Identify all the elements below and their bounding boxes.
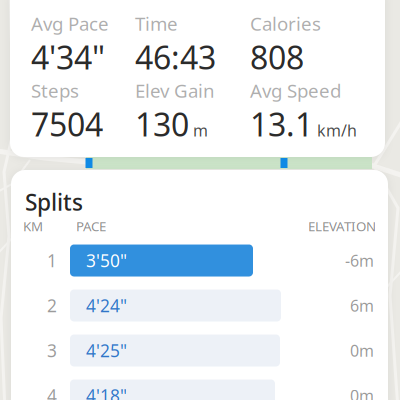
staticText: 808 — [250, 36, 304, 78]
staticText: PACE — [76, 217, 106, 235]
staticText: 3'50" — [86, 249, 127, 272]
staticText: Avg Speed — [250, 78, 341, 103]
staticText: Splits — [25, 187, 83, 217]
staticText: 2 — [47, 294, 57, 317]
staticText: 0m — [350, 340, 374, 361]
staticText: Elev Gain — [135, 78, 215, 103]
staticText: 4 — [47, 384, 57, 400]
staticText: 4'18" — [86, 384, 127, 400]
staticText: 6m — [350, 295, 374, 316]
button[interactable]: 3 — [25, 328, 374, 373]
staticText: 1 — [47, 249, 57, 272]
staticText: 130 — [135, 103, 189, 145]
staticText: 3 — [47, 339, 57, 362]
staticText: Avg Pace — [31, 11, 109, 36]
staticText: KM — [23, 217, 43, 235]
staticText: km/h — [317, 120, 357, 141]
staticText: Calories — [250, 11, 321, 36]
button[interactable]: 1 — [25, 238, 374, 283]
staticText: 7504 — [31, 103, 103, 145]
button[interactable]: 4 — [25, 373, 374, 400]
button[interactable]: 2 — [25, 283, 374, 328]
staticText: 13.1 — [250, 103, 313, 145]
staticText: 4'25" — [86, 339, 127, 362]
staticText: -6m — [345, 250, 374, 271]
staticText: 4'34" — [31, 36, 105, 78]
staticText: ELEVATION — [308, 217, 376, 235]
staticText: Time — [135, 11, 178, 36]
staticText: 0m — [350, 385, 374, 400]
staticText: m — [193, 120, 208, 141]
staticText: Steps — [31, 78, 79, 103]
staticText: 46:43 — [135, 36, 216, 78]
staticText: 4'24" — [86, 294, 127, 317]
